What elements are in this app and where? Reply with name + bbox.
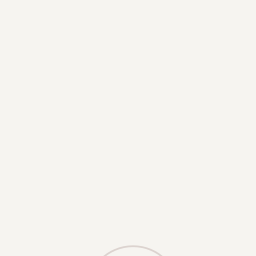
button[interactable]: Open — [87, 246, 179, 256]
